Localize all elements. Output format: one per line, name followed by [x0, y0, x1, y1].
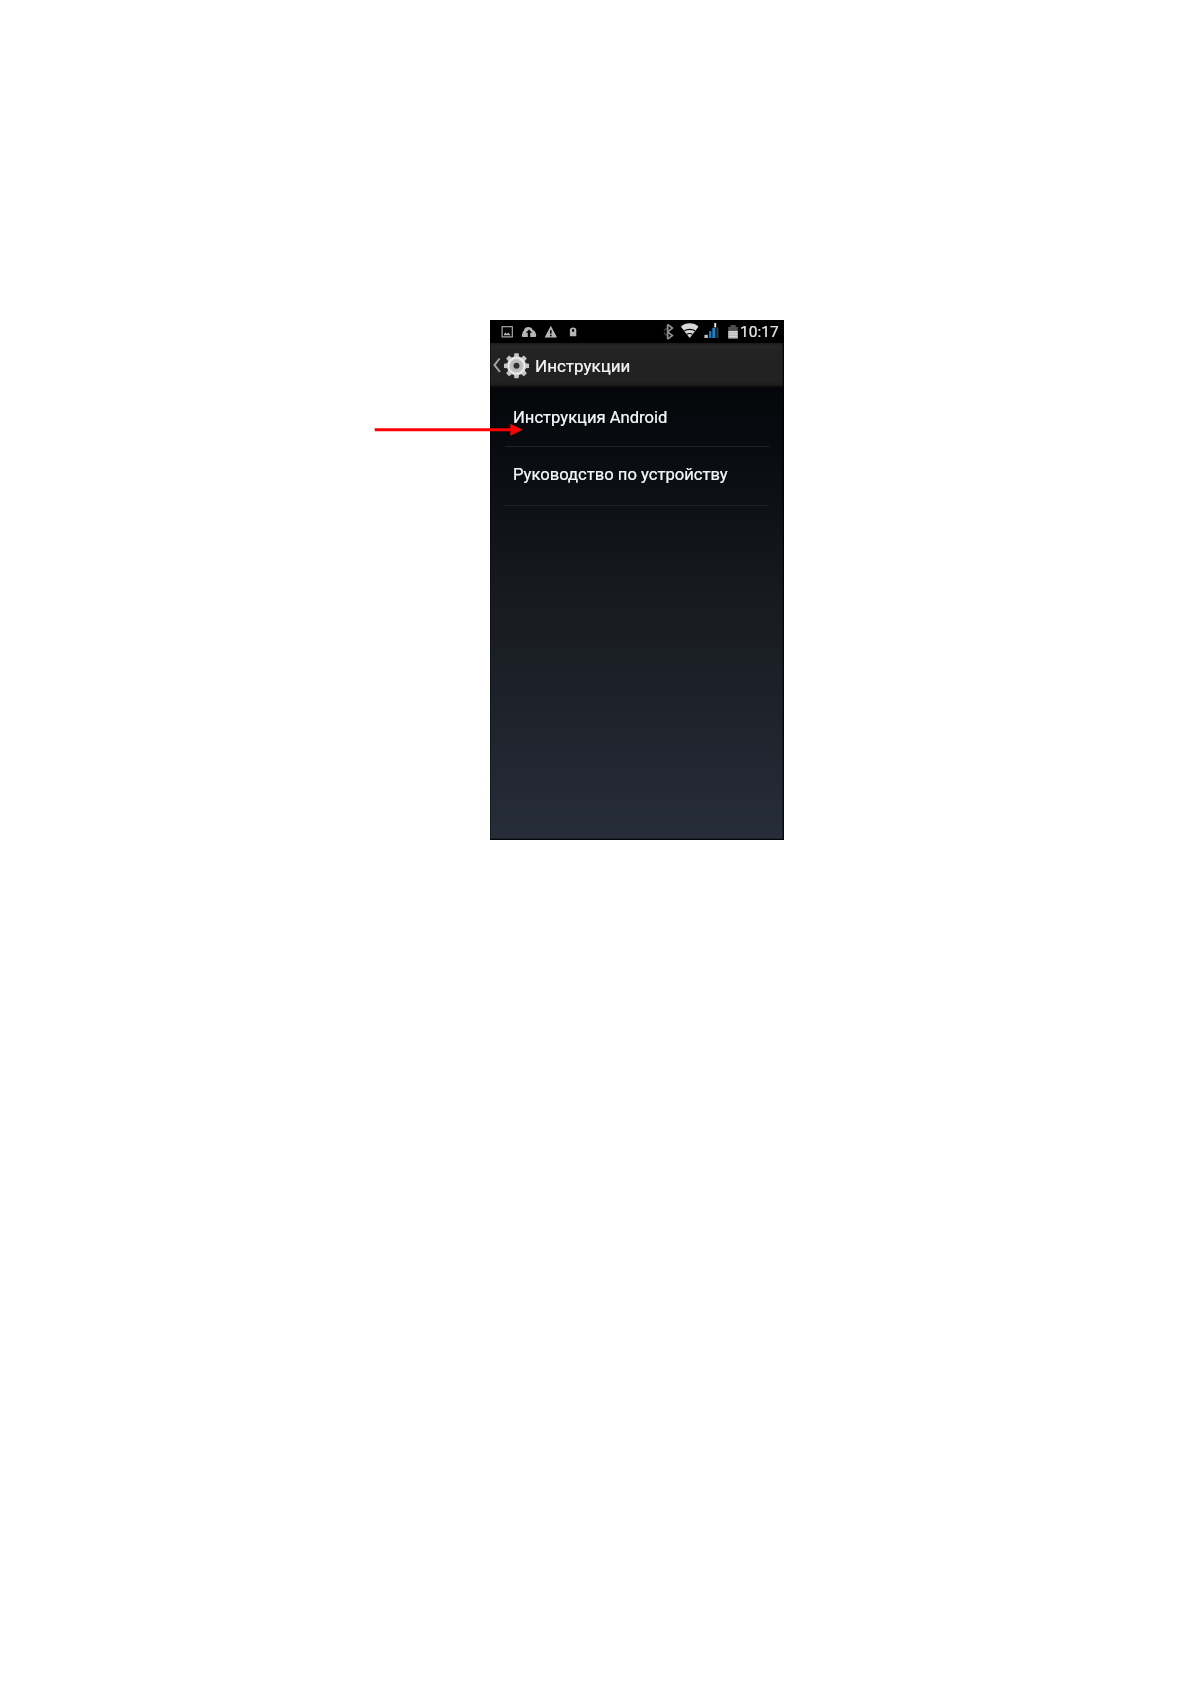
staticText: Руководство по устройству: [513, 465, 728, 484]
staticText: 10:17: [740, 323, 779, 341]
button[interactable]: Инструкция Android: [490, 388, 784, 446]
staticText: Инструкция Android: [513, 408, 668, 427]
staticText: Инструкции: [535, 356, 631, 376]
button[interactable]: Руководство по устройству: [490, 447, 784, 505]
button[interactable]: Инструкции: [490, 343, 642, 388]
